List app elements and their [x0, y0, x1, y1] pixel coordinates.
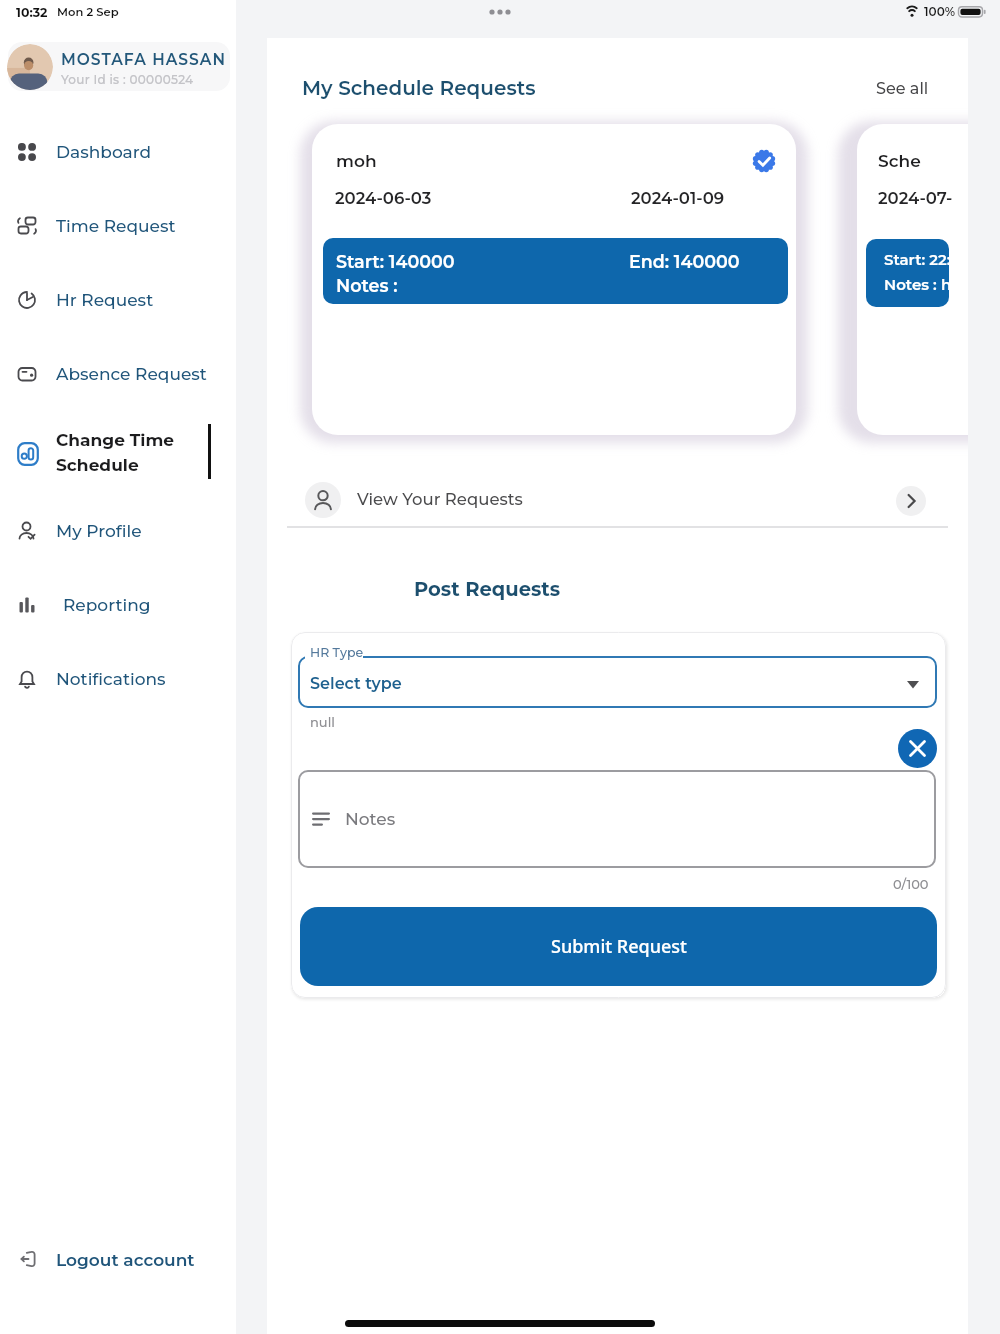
staticText: Logout account — [56, 1250, 195, 1271]
staticText: Notes — [345, 809, 396, 830]
staticText: 2024-07- — [878, 188, 953, 208]
button[interactable] — [8, 204, 218, 248]
button[interactable] — [298, 770, 936, 868]
button[interactable]: See all — [876, 69, 929, 109]
button[interactable] — [898, 729, 937, 768]
staticText: Notifications — [56, 669, 166, 690]
staticText: Select type — [310, 674, 402, 694]
staticText: Time Request — [56, 216, 176, 237]
staticText: Absence Request — [56, 364, 207, 385]
staticText: HR Type — [310, 645, 364, 660]
button[interactable]: moh — [312, 124, 796, 435]
button[interactable] — [8, 278, 218, 322]
button[interactable] — [298, 656, 937, 708]
button[interactable] — [8, 42, 230, 91]
staticText: 0/100 — [893, 876, 929, 892]
button[interactable] — [8, 583, 218, 627]
staticText: End: 140000 — [629, 251, 740, 272]
staticText: My Profile — [56, 521, 142, 542]
staticText: Submit Request — [551, 934, 687, 959]
staticText: Notes : h — [884, 275, 952, 293]
button[interactable] — [8, 509, 218, 553]
staticText: Your Id is : 00000524 — [61, 72, 194, 87]
button[interactable] — [287, 478, 947, 522]
staticText: 10:32 — [16, 5, 48, 20]
staticText: Start: 140000 — [336, 251, 455, 272]
staticText: Sche — [878, 151, 921, 172]
staticText: 2024-06-03 — [335, 188, 432, 208]
staticText: Mon 2 Sep — [57, 5, 119, 19]
staticText: Change Time — [56, 430, 175, 451]
button[interactable] — [8, 657, 218, 701]
staticText: Dashboard — [56, 142, 152, 163]
staticText: 2024-01-09 — [631, 188, 725, 208]
staticText: View Your Requests — [357, 489, 523, 509]
staticText: Post Requests — [414, 577, 561, 601]
staticText: My Schedule Requests — [302, 76, 536, 100]
staticText: See all — [876, 79, 929, 99]
staticText: Reporting — [63, 595, 151, 616]
button[interactable] — [8, 1240, 228, 1280]
staticText: Start: 22: — [884, 250, 951, 268]
staticText: Hr Request — [56, 290, 154, 311]
button[interactable]: Submit Request — [300, 907, 937, 986]
button[interactable] — [8, 420, 218, 484]
staticText: 100% — [924, 4, 956, 19]
staticText: Notes : — [336, 275, 398, 296]
button[interactable] — [8, 130, 218, 174]
button[interactable]: Sche — [857, 124, 968, 435]
staticText: Schedule — [56, 455, 139, 476]
staticText: null — [310, 714, 335, 730]
staticText: MOSTAFA HASSAN — [61, 50, 226, 69]
button[interactable] — [896, 486, 926, 516]
staticText: moh — [336, 151, 377, 172]
button[interactable] — [8, 352, 218, 396]
